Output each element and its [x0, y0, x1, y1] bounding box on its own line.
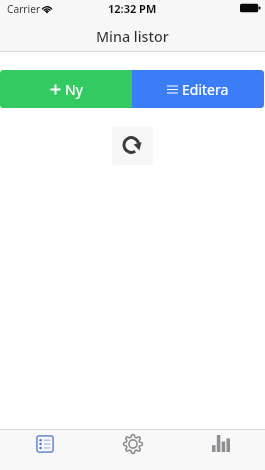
staticText: Ny	[65, 80, 83, 99]
button[interactable]: Refresh	[112, 126, 153, 165]
staticText: Editera	[182, 80, 229, 99]
button[interactable]: Statistics	[177, 430, 265, 470]
staticText: 12:32 PM	[108, 1, 157, 16]
staticText: Carrier	[7, 2, 41, 16]
staticText: Mina listor	[96, 27, 169, 46]
button[interactable]: Lists	[0, 430, 89, 470]
button[interactable]: Ny	[0, 70, 132, 108]
button[interactable]: Editera	[132, 70, 264, 108]
button[interactable]: Settings	[89, 430, 177, 470]
